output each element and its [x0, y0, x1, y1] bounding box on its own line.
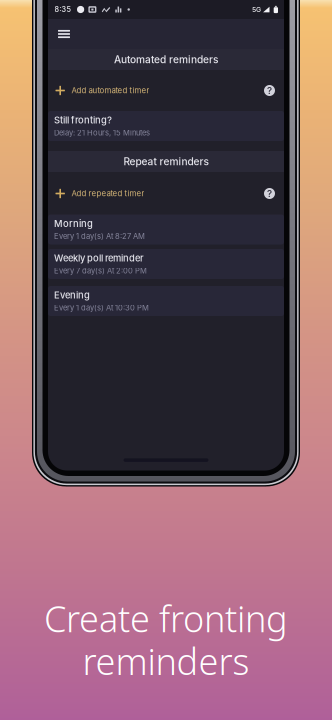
- staticText: Every 1 day(s) At 8:27 AM: [54, 232, 145, 241]
- staticText: Evening: [54, 290, 90, 301]
- staticText: Morning: [54, 218, 93, 229]
- button[interactable]: Still fronting?: [48, 111, 284, 141]
- staticText: Repeat reminders: [123, 155, 208, 168]
- staticText: Add automated timer: [71, 86, 149, 95]
- staticText: Still fronting?: [54, 115, 112, 126]
- staticText: reminders: [82, 637, 249, 685]
- staticText: 5G: [252, 5, 261, 14]
- button[interactable]: Evening: [48, 286, 284, 316]
- staticText: ?: [267, 188, 272, 199]
- staticText: Every 1 day(s) At 10:30 PM: [54, 303, 149, 312]
- staticText: 8:35: [54, 5, 70, 14]
- staticText: Delay: 21 Hours, 15 Minutes: [54, 128, 150, 137]
- button[interactable]: Weekly poll reminder: [48, 249, 284, 279]
- staticText: Every 7 day(s) At 2:00 PM: [54, 266, 147, 275]
- staticText: Automated reminders: [114, 53, 218, 66]
- staticText: Add repeated timer: [71, 189, 144, 198]
- button[interactable]: Add automated timer: [48, 70, 284, 111]
- staticText: Create fronting: [44, 594, 288, 642]
- staticText: Weekly poll reminder: [54, 253, 144, 264]
- button[interactable]: Morning: [48, 214, 284, 244]
- staticText: ?: [267, 85, 272, 96]
- button[interactable]: Add repeated timer: [48, 173, 284, 214]
- button[interactable]: Menu: [51, 19, 77, 49]
